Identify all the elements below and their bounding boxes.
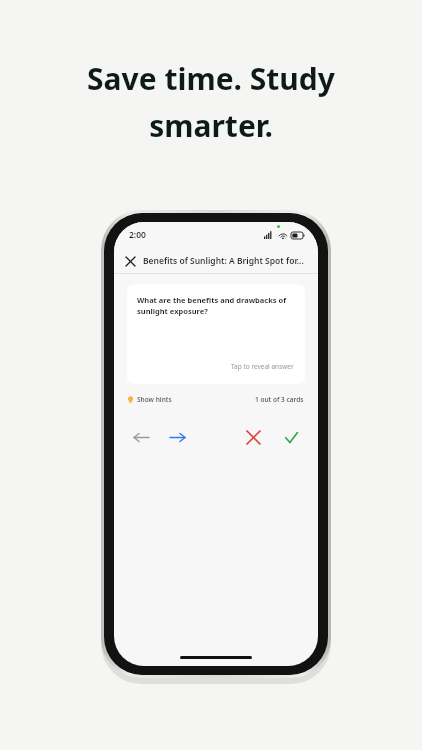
button[interactable]: Mark correct: [280, 426, 302, 448]
staticText: 1 out of 3 cards: [255, 395, 304, 404]
button[interactable]: Close: [120, 251, 140, 271]
staticText: 2:00: [129, 229, 146, 241]
staticText: Show hints: [137, 395, 172, 404]
staticText: Tap to reveal answer: [231, 362, 294, 371]
button[interactable]: Previous card: [130, 426, 152, 448]
button[interactable]: Next card: [166, 426, 188, 448]
staticText: smarter.: [149, 105, 273, 146]
button[interactable]: Mark incorrect: [242, 426, 264, 448]
staticText: Benefits of Sunlight: A Bright Spot for.…: [143, 255, 304, 267]
staticText: What are the benefits and drawbacks of s…: [137, 295, 291, 316]
button[interactable]: Show hints: [128, 395, 172, 404]
button[interactable]: What are the benefits and drawbacks of s…: [127, 284, 305, 384]
staticText: Save time. Study: [87, 58, 335, 99]
